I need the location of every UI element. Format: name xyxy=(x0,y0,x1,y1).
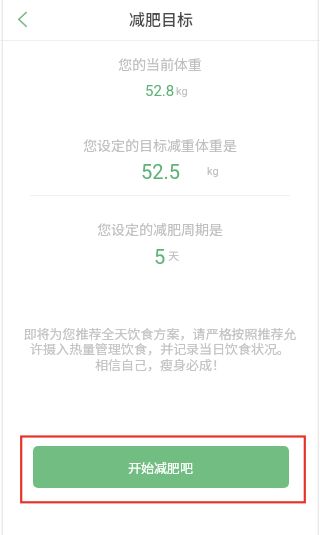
staticText: kg xyxy=(176,85,188,98)
staticText: 您的当前体重 xyxy=(0,54,320,74)
staticText: 您设定的减肥周期是 xyxy=(0,219,320,239)
staticText: kg xyxy=(207,165,219,178)
staticText: 天 xyxy=(168,247,179,263)
staticText: 开始减肥吧 xyxy=(128,458,194,477)
staticText: 52.5 xyxy=(141,160,180,182)
staticText: 减肥目标 xyxy=(129,7,194,30)
button[interactable]: Back xyxy=(0,0,40,40)
staticText: 52.8 xyxy=(145,82,175,100)
staticText: 您设定的目标减重体重是 xyxy=(0,135,320,155)
button[interactable]: 开始减肥吧 xyxy=(33,446,289,488)
staticText: 即将为您推荐全天饮食方案，请严格按照推荐允 许摄入热量管理饮食，并记录当日饮食状… xyxy=(23,324,297,374)
staticText: 5 xyxy=(154,245,166,267)
